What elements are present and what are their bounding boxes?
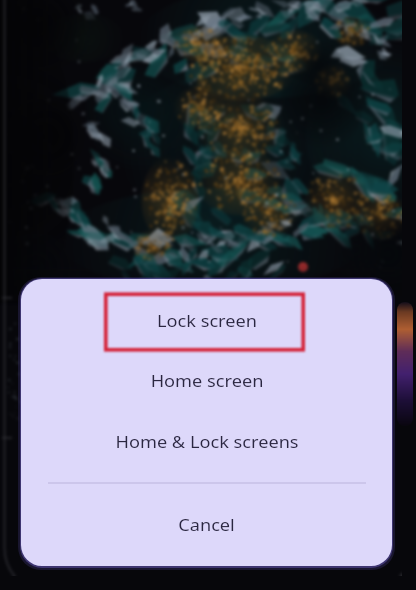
button[interactable]: Home screen bbox=[21, 350, 392, 410]
button[interactable]: Lock screen bbox=[21, 290, 392, 350]
button[interactable]: Home & Lock screens bbox=[21, 411, 392, 471]
staticText: Home & Lock screens bbox=[115, 429, 299, 452]
staticText: Home screen bbox=[151, 368, 263, 391]
button[interactable]: Cancel bbox=[21, 494, 392, 554]
staticText: Cancel bbox=[178, 512, 235, 535]
staticText: Lock screen bbox=[157, 308, 257, 331]
